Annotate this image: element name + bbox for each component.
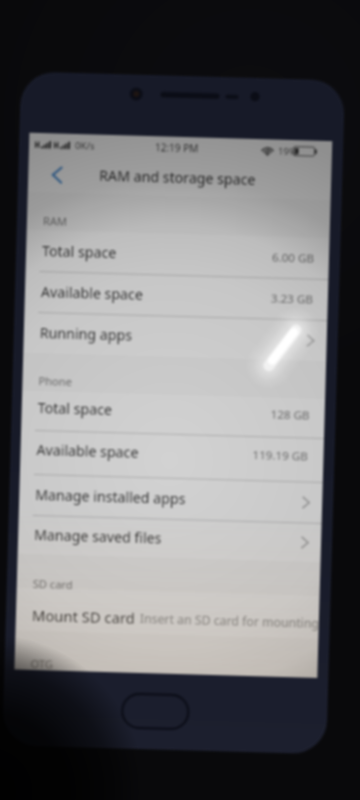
staticText: Running apps	[40, 323, 133, 345]
button[interactable]: Running apps	[23, 312, 327, 361]
button[interactable]: Back	[46, 159, 69, 190]
staticText: 12:19 PM	[155, 140, 199, 155]
staticText: SD card	[33, 576, 73, 592]
staticText: RAM and storage space	[99, 166, 256, 189]
button[interactable]: Manage saved files	[18, 514, 322, 562]
staticText: Phone	[38, 373, 73, 389]
button[interactable]: Mount SD card	[15, 587, 320, 639]
staticText: Insert an SD card for mounting	[140, 610, 320, 632]
staticText: RAM	[43, 213, 68, 229]
staticText: 0K/s	[75, 139, 95, 153]
button[interactable]: Available space	[24, 271, 328, 320]
staticText: 3.23 GB	[271, 290, 313, 308]
staticText: 19%	[278, 145, 297, 158]
staticText: Total space	[37, 398, 113, 419]
staticText: 6.00 GB	[272, 249, 314, 267]
staticText: 119.19 GB	[252, 447, 309, 465]
button[interactable]: Total space	[26, 230, 330, 279]
staticText: Available space	[36, 440, 139, 462]
staticText: Total space	[42, 241, 117, 262]
staticText: Manage installed apps	[35, 485, 186, 508]
button[interactable]: Total space	[21, 391, 325, 438]
staticText: Available space	[41, 282, 143, 304]
staticText: Manage saved files	[34, 525, 162, 548]
staticText: 128 GB	[270, 406, 310, 424]
button[interactable]: Available space	[20, 430, 324, 482]
button[interactable]: Manage installed apps	[19, 474, 323, 523]
staticText: OTG	[30, 656, 54, 671]
staticText: Mount SD card	[32, 605, 135, 628]
